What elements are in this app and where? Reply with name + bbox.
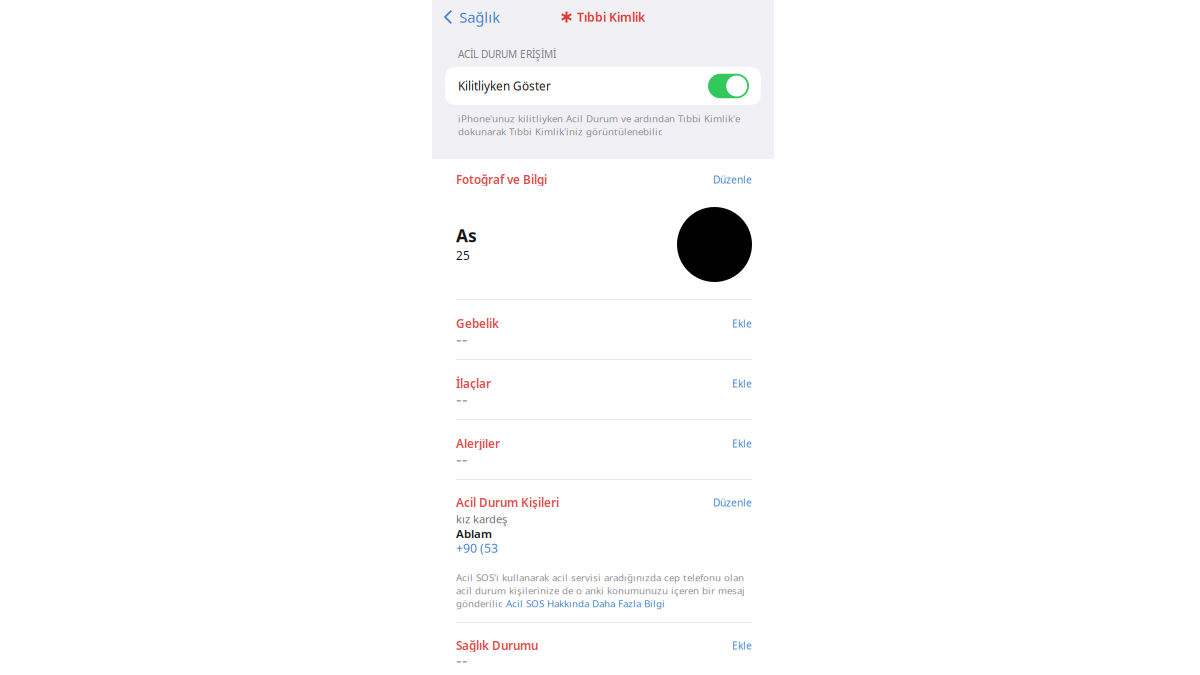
staticText: -- [456,388,468,411]
staticText: Fotoğraf ve Bilgi [456,171,547,187]
staticText: Acil SOS'i kullanarak acil servisi aradı… [456,571,744,584]
staticText: Tıbbi Kimlik [577,9,645,25]
staticText: Ekle [732,317,752,330]
button[interactable]: Sağlık Durumu [432,623,774,675]
button[interactable]: Acil Durum Kişileri [432,480,774,622]
staticText: Kilitliyken Göster [458,78,551,94]
staticText: Acil Durum Kişileri [456,494,559,510]
staticText: Ekle [732,377,752,390]
staticText: Sağlık Durumu [456,637,538,653]
staticText: acil durum kişilerinize de o anki konumu… [456,584,745,597]
button[interactable]: Acil SOS Hakkında Daha Fazla Bilgi [506,597,665,610]
staticText: Alerjiler [456,435,500,451]
staticText: Düzenle [713,496,752,509]
button[interactable]: Fotoğraf ve Bilgi [432,159,774,299]
button[interactable]: Ekle [722,639,752,652]
staticText: gönderilir. [456,597,506,610]
staticText: ACİL DURUM ERİŞİMİ [458,47,556,61]
staticText: Düzenle [713,173,752,186]
button[interactable]: Gebelik [432,300,774,359]
button[interactable]: Düzenle [703,496,752,509]
staticText: iPhone'unuz kilitliyken Acil Durum ve ar… [458,112,740,125]
button[interactable]: İlaçlar [432,360,774,419]
staticText: Ablam [456,526,492,541]
button[interactable]: Ekle [722,317,752,330]
button[interactable]: +90 (53 [456,540,498,556]
staticText: Sağlık [459,7,500,27]
button[interactable]: Ekle [722,437,752,450]
staticText: -- [456,649,468,672]
button[interactable]: Sağlık [432,3,508,31]
staticText: dokunarak Tıbbi Kimlik'iniz görüntüleneb… [458,125,663,138]
staticText: -- [456,448,468,471]
staticText: Acil SOS Hakkında Daha Fazla Bilgi [506,597,665,610]
staticText: Ekle [732,437,752,450]
staticText: kız kardeş [456,511,507,527]
staticText: Gebelik [456,315,499,331]
button[interactable]: Düzenle [703,173,752,186]
staticText: +90 (53 [456,540,498,556]
staticText: -- [456,328,468,351]
staticText: İlaçlar [456,375,491,391]
staticText: 25 [456,247,470,263]
button[interactable]: Ekle [722,377,752,390]
button[interactable]: Kilitliyken Göster [708,74,749,98]
staticText: As [456,224,477,247]
button[interactable]: Alerjiler [432,420,774,479]
staticText: Ekle [732,639,752,652]
